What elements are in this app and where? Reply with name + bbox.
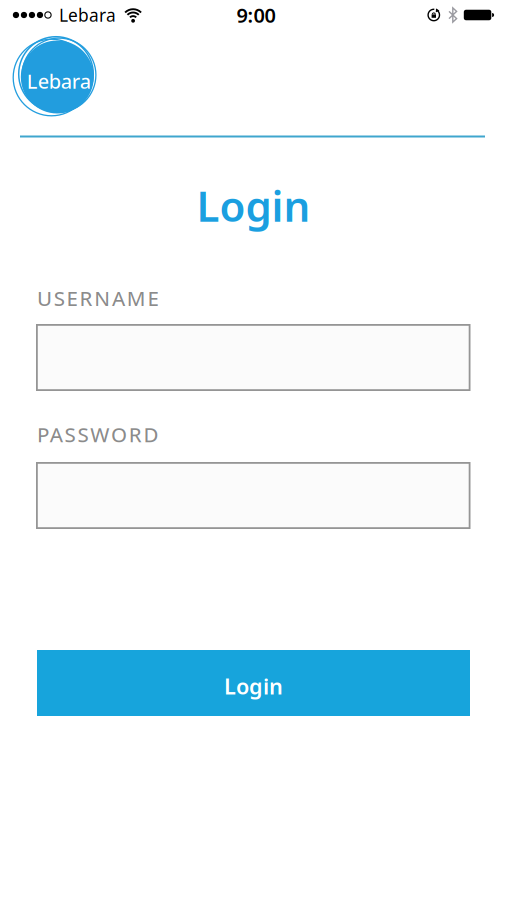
staticText: PASSWORD — [37, 420, 159, 448]
staticText: Login — [196, 177, 310, 234]
staticText: Login — [224, 671, 283, 701]
staticText: 9:00 — [236, 2, 275, 28]
staticText: USERNAME — [37, 284, 159, 312]
button[interactable]: Username — [36, 324, 470, 391]
button[interactable]: Password — [36, 462, 470, 529]
staticText: Lebara — [27, 67, 91, 95]
staticText: Lebara — [59, 3, 116, 26]
button[interactable]: Login — [37, 650, 470, 716]
